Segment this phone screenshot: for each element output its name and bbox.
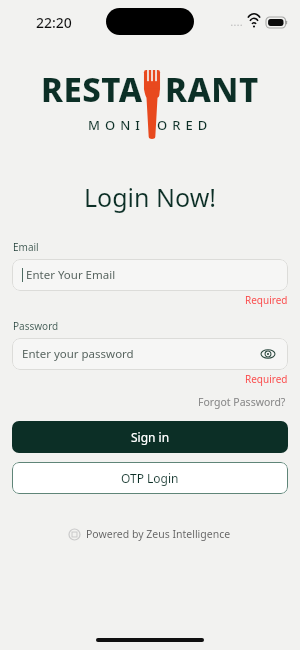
staticText: Login Now! [0, 180, 300, 214]
staticText: Enter Your Email [26, 267, 278, 283]
staticText: Powered by Zeus Intelligence [86, 527, 231, 541]
staticText: ORED [157, 116, 213, 134]
staticText: Sign in [131, 429, 170, 445]
button[interactable]: OTP Login [12, 462, 288, 494]
button[interactable]: Enter Your Email [12, 259, 288, 291]
staticText: Required [245, 372, 288, 386]
staticText: Email [13, 240, 39, 254]
staticText: Enter your password [22, 346, 258, 362]
button[interactable]: Forgot Password? [196, 392, 288, 412]
button[interactable]: Sign in [12, 421, 288, 453]
staticText: Required [245, 293, 288, 307]
staticText: Password [13, 319, 59, 333]
staticText: 22:20 [36, 13, 72, 32]
staticText: MONI [88, 116, 145, 134]
staticText: Forgot Password? [198, 395, 286, 409]
staticText: RESTA [41, 67, 143, 112]
button[interactable]: Enter your password [12, 338, 288, 370]
staticText: OTP Login [121, 470, 179, 486]
staticText: RANT [165, 67, 259, 112]
button[interactable]: Show password [258, 344, 278, 364]
